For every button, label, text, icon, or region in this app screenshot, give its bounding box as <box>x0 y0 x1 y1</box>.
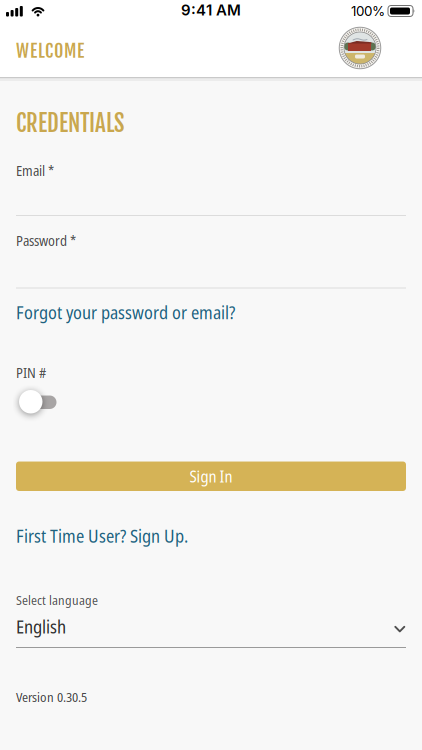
staticText: English <box>16 614 66 639</box>
staticText: 100% <box>351 3 385 19</box>
staticText: Version 0.30.5 <box>16 688 87 706</box>
staticText: Select language <box>16 591 98 609</box>
staticText: CREDENTIALS <box>16 109 124 138</box>
button[interactable]: PIN # toggle <box>15 389 53 414</box>
staticText: Email * <box>16 161 54 180</box>
button[interactable]: First Time User? Sign Up. <box>16 523 188 548</box>
staticText: WELCOME <box>16 39 84 62</box>
staticText: PIN # <box>16 363 46 382</box>
staticText: Password * <box>16 231 76 250</box>
button[interactable]: Select language: English <box>16 614 406 648</box>
staticText: 9:41 AM <box>181 1 241 19</box>
button[interactable]: Forgot your password or email? <box>16 300 235 324</box>
staticText: Sign In <box>189 465 232 487</box>
button[interactable]: Sign In <box>16 461 406 491</box>
staticText: First Time User? Sign Up. <box>16 523 188 548</box>
staticText: Forgot your password or email? <box>16 300 235 324</box>
